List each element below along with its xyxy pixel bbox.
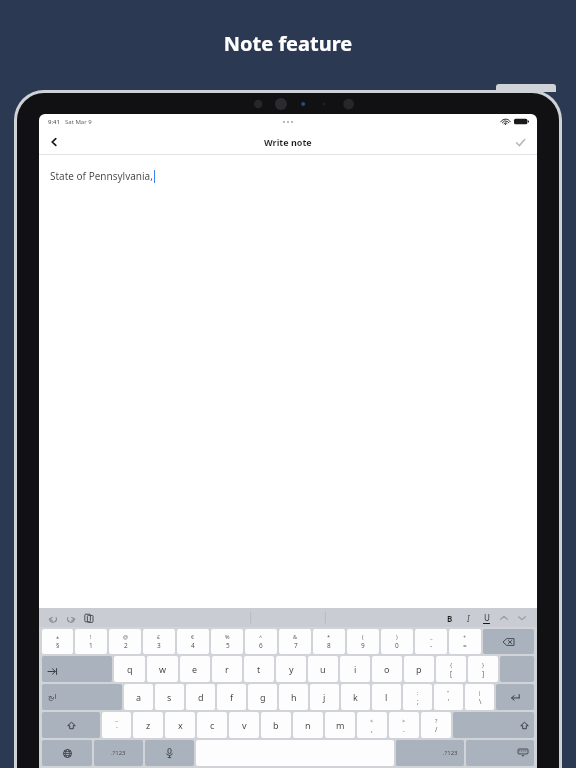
button[interactable]: ?	[421, 712, 451, 738]
button[interactable]: ^	[245, 629, 277, 654]
button[interactable]: Underline	[477, 609, 495, 627]
button[interactable]: w	[147, 656, 178, 682]
button[interactable]: Redo	[62, 609, 80, 627]
button[interactable]: ±	[42, 629, 73, 654]
button[interactable]: i	[340, 656, 370, 682]
staticText: n	[305, 719, 311, 731]
button[interactable]: k	[341, 684, 370, 710]
button[interactable]: :	[403, 684, 432, 710]
staticText: !	[90, 633, 92, 640]
button[interactable]: l	[372, 684, 401, 710]
button[interactable]: t	[244, 656, 274, 682]
button[interactable]: >	[389, 712, 419, 738]
button[interactable]: h	[279, 684, 308, 710]
staticText: /	[435, 725, 438, 734]
staticText: w	[159, 663, 167, 675]
button[interactable]: d	[186, 684, 215, 710]
button[interactable]: £	[143, 629, 175, 654]
button[interactable]: "	[434, 684, 463, 710]
staticText: *	[327, 633, 331, 640]
button[interactable]: @	[109, 629, 141, 654]
button[interactable]: c	[197, 712, 227, 738]
staticText: 9	[361, 641, 365, 650]
staticText: 5	[226, 641, 230, 650]
button[interactable]: €	[177, 629, 209, 654]
button[interactable]: +	[449, 629, 481, 654]
button[interactable]: %	[211, 629, 243, 654]
staticText: e	[192, 663, 198, 675]
button[interactable]: Shift right	[453, 712, 534, 738]
button[interactable]: _	[415, 629, 447, 654]
button[interactable]: )	[381, 629, 413, 654]
staticText: ?	[435, 717, 438, 724]
staticText: l	[385, 691, 388, 703]
staticText: _	[430, 633, 433, 640]
button[interactable]: e	[180, 656, 210, 682]
staticText: k	[353, 691, 358, 703]
staticText: j	[323, 691, 326, 703]
staticText: m	[336, 719, 345, 731]
button[interactable]: Next	[513, 609, 531, 627]
button[interactable]: x	[165, 712, 195, 738]
button[interactable]: Previous	[495, 609, 513, 627]
button[interactable]: Globe	[42, 740, 92, 766]
button[interactable]: Save note	[509, 131, 531, 153]
button[interactable]: g	[248, 684, 277, 710]
staticText: c	[210, 719, 215, 731]
button[interactable]: r	[212, 656, 242, 682]
button[interactable]: Paste	[80, 609, 98, 627]
button[interactable]: {	[436, 656, 466, 682]
button[interactable]: f	[217, 684, 246, 710]
button[interactable]: .?123	[94, 740, 143, 766]
button[interactable]: I	[459, 609, 477, 627]
staticText: <	[370, 717, 374, 724]
button[interactable]: u	[308, 656, 338, 682]
button[interactable]: Undo	[44, 609, 62, 627]
button[interactable]: Backspace	[483, 629, 534, 654]
button[interactable]: o	[372, 656, 402, 682]
button[interactable]: s	[155, 684, 184, 710]
button[interactable]: (	[347, 629, 379, 654]
staticText: "	[447, 689, 450, 696]
button[interactable]: Dictation	[145, 740, 194, 766]
button[interactable]: Hide keyboard	[466, 740, 534, 766]
button[interactable]: B	[441, 609, 459, 627]
staticText: §	[56, 641, 60, 650]
button[interactable]: q	[114, 656, 145, 682]
staticText: {	[450, 661, 453, 668]
button[interactable]: p	[404, 656, 434, 682]
button[interactable]: Back	[43, 131, 65, 153]
staticText: 6	[259, 641, 263, 650]
staticText: x	[178, 719, 183, 731]
button[interactable]: b	[261, 712, 291, 738]
staticText: %	[225, 633, 230, 640]
button[interactable]: m	[325, 712, 355, 738]
button[interactable]: ~	[102, 712, 131, 738]
button[interactable]: .?123	[396, 740, 464, 766]
button[interactable]: Return	[496, 684, 534, 710]
staticText: [	[450, 669, 453, 678]
button[interactable]: }	[468, 656, 498, 682]
staticText: o	[384, 663, 390, 675]
button[interactable]: <	[357, 712, 387, 738]
button[interactable]: Switch language	[42, 684, 122, 710]
staticText: ,	[371, 725, 373, 734]
staticText: p	[416, 663, 422, 675]
button[interactable]: y	[276, 656, 306, 682]
button[interactable]: !	[75, 629, 107, 654]
staticText: ~	[115, 717, 119, 724]
button[interactable]: a	[124, 684, 153, 710]
button[interactable]: Tab	[42, 656, 112, 682]
button[interactable]: *	[313, 629, 345, 654]
button[interactable]: j	[310, 684, 339, 710]
button[interactable]: v	[229, 712, 259, 738]
button[interactable]: n	[293, 712, 323, 738]
button[interactable]: |	[465, 684, 494, 710]
button[interactable]: Shift	[42, 712, 100, 738]
button[interactable]: z	[133, 712, 163, 738]
staticText: -	[430, 641, 433, 650]
button[interactable]: &	[279, 629, 311, 654]
staticText: .?123	[443, 749, 458, 757]
